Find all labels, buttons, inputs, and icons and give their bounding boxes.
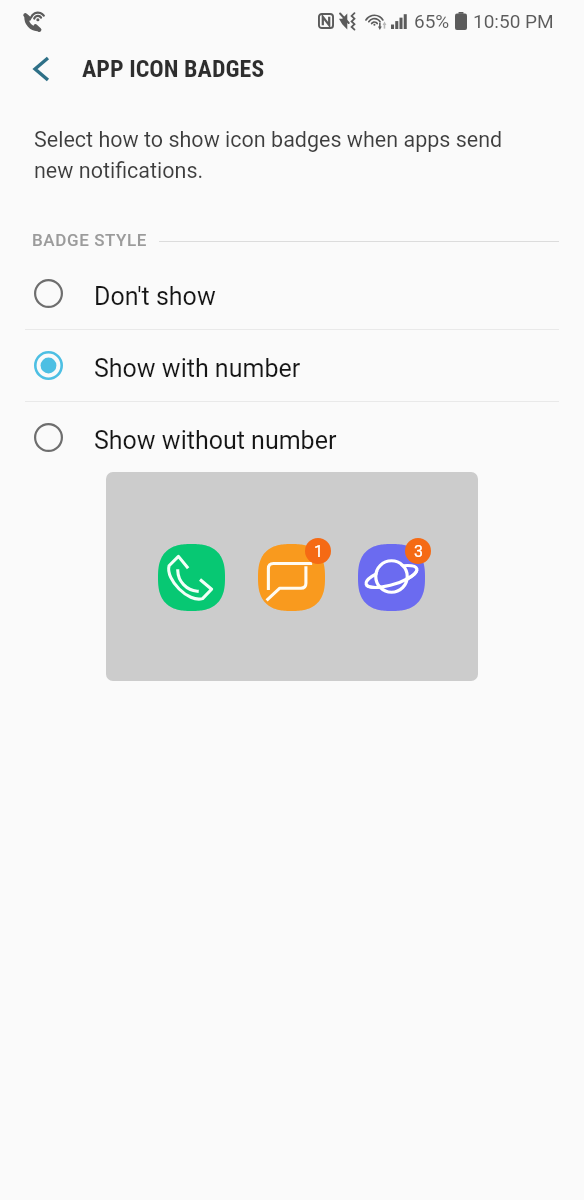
- staticText: 10:50 PM: [473, 10, 554, 32]
- button[interactable]: Navigate up: [0, 44, 82, 94]
- staticText: Show with number: [94, 354, 301, 383]
- staticText: APP ICON BADGES: [82, 55, 265, 83]
- staticText: Don't show: [94, 282, 216, 311]
- staticText: 65%: [414, 10, 450, 32]
- button[interactable]: Show without number: [0, 402, 584, 473]
- button[interactable]: Don't show: [0, 258, 584, 329]
- staticText: BADGE STYLE: [32, 230, 148, 250]
- staticText: Select how to show icon badges when apps…: [34, 127, 508, 183]
- staticText: 1: [314, 542, 323, 561]
- staticText: Show without number: [94, 426, 337, 455]
- staticText: 3: [414, 542, 423, 561]
- button[interactable]: Show with number: [0, 330, 584, 401]
